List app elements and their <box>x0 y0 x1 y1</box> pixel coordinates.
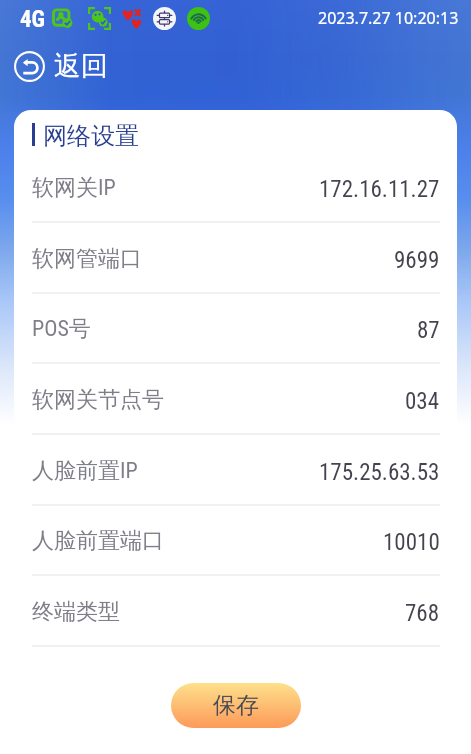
button[interactable]: 保存 <box>171 683 301 728</box>
staticText: 034 <box>405 388 440 415</box>
staticText: 网络设置 <box>43 121 139 147</box>
staticText: 768 <box>405 600 440 627</box>
staticText: 保存 <box>213 691 259 720</box>
button[interactable]: 软网管端口 <box>14 223 457 294</box>
staticText: 软网关节点号 <box>32 386 164 414</box>
button[interactable]: 人脸前置IP <box>14 435 457 506</box>
button[interactable]: 终端类型 <box>14 576 457 647</box>
staticText: 4G <box>20 6 46 33</box>
other: 返回 <box>14 51 45 82</box>
staticText: POS号 <box>32 315 91 343</box>
button[interactable]: 软网关IP <box>14 147 457 223</box>
button[interactable]: 人脸前置端口 <box>14 506 457 576</box>
staticText: 175.25.63.53 <box>319 459 440 486</box>
staticText: 终端类型 <box>32 598 120 626</box>
staticText: 87 <box>417 317 440 344</box>
staticText: 人脸前置IP <box>32 457 138 485</box>
staticText: 软网管端口 <box>32 245 142 273</box>
staticText: 10010 <box>383 529 440 556</box>
staticText: 软网关IP <box>32 174 116 202</box>
staticText: 172.16.11.27 <box>319 176 440 203</box>
staticText: 人脸前置端口 <box>32 527 164 555</box>
staticText: 2023.7.27 10:20:13 <box>318 7 459 29</box>
staticText: 9699 <box>394 247 440 274</box>
button[interactable]: 软网关节点号 <box>14 364 457 435</box>
button[interactable]: 返回 <box>14 49 108 83</box>
button[interactable]: POS号 <box>14 294 457 364</box>
staticText: 返回 <box>54 49 108 83</box>
